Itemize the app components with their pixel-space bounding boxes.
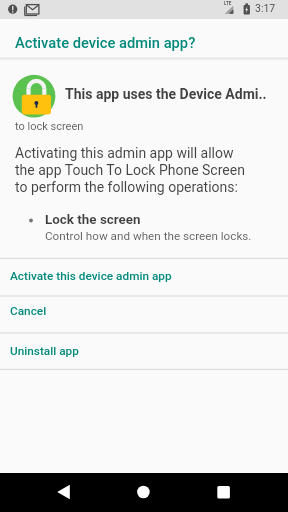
staticText: Activate this device admin app: [10, 269, 172, 283]
staticText: 3:17: [255, 2, 276, 14]
staticText: Activating this admin app will allow the…: [15, 145, 245, 196]
staticText: This app uses the Device Admi..: [65, 86, 267, 102]
staticText: Cancel: [10, 304, 47, 318]
staticText: Lock the screen: [45, 212, 141, 228]
staticText: Uninstall app: [10, 344, 79, 358]
staticText: LTE: [224, 1, 232, 6]
staticText: to lock screen: [15, 120, 84, 133]
staticText: Activate device admin app?: [15, 34, 196, 51]
staticText: Control how and when the screen locks.: [45, 229, 252, 243]
